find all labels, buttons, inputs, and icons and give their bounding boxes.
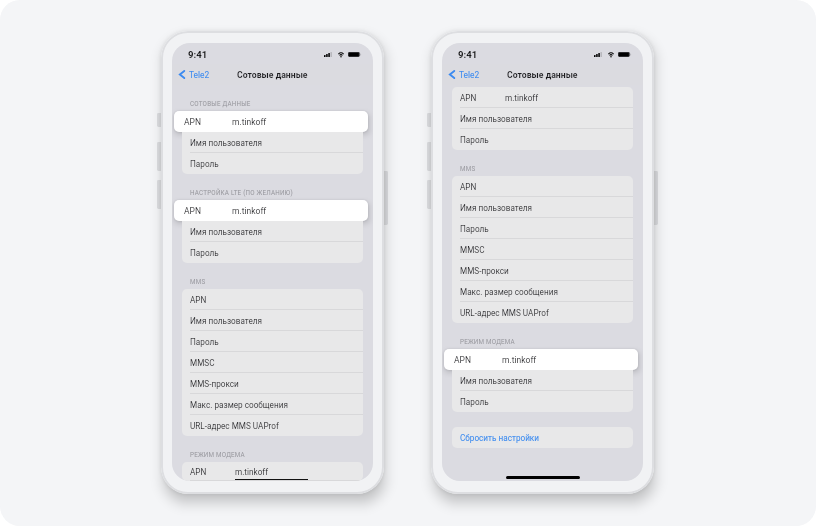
staticText: СОТОВЫЕ ДАННЫЕ [190, 100, 251, 107]
button[interactable]: Back [179, 64, 210, 85]
button[interactable]: Имя пользователя [182, 221, 363, 242]
button[interactable]: Пароль [452, 129, 633, 150]
staticText: Tele2 [459, 70, 480, 80]
staticText: Сотовые данные [507, 70, 578, 80]
button[interactable]: Макс. размер сообщения [452, 281, 633, 302]
button[interactable]: Пароль [452, 391, 633, 412]
button[interactable]: Макс. размер сообщения [182, 394, 363, 415]
button[interactable]: MMSC [182, 352, 363, 373]
staticText: m.tinkoff [505, 93, 539, 103]
staticText: Сотовые данные [237, 70, 308, 80]
staticText: APN [190, 295, 207, 305]
staticText: Пароль [460, 135, 489, 145]
staticText: MMS-прокси [460, 266, 509, 276]
staticText: 9:41 [188, 49, 208, 60]
button[interactable]: Пароль [182, 331, 363, 352]
button[interactable]: MMS-прокси [182, 373, 363, 394]
button[interactable]: Имя пользователя [452, 197, 633, 218]
staticText: Пароль [190, 159, 219, 169]
button[interactable]: Back [449, 64, 480, 85]
button[interactable]: Имя пользователя [182, 132, 363, 153]
staticText: Имя пользователя [460, 376, 533, 386]
staticText: Пароль [460, 397, 489, 407]
staticText: APN [454, 355, 471, 365]
staticText: 9:41 [458, 49, 478, 60]
button[interactable]: APN [452, 176, 633, 197]
staticText: Имя пользователя [460, 203, 533, 213]
staticText: Имя пользователя [190, 138, 263, 148]
staticText: Пароль [190, 337, 219, 347]
staticText: НАСТРОЙКА LTE (ПО ЖЕЛАНИЮ) [190, 189, 293, 196]
staticText: РЕЖИМ МОДЕМА [190, 451, 245, 458]
button[interactable]: Пароль [182, 242, 363, 263]
other: Back [179, 70, 185, 79]
button[interactable]: Пароль [182, 153, 363, 174]
staticText: MMS [460, 165, 476, 172]
staticText: Пароль [460, 224, 489, 234]
staticText: APN [190, 467, 207, 477]
staticText: m.tinkoff [235, 467, 269, 477]
staticText: Сбросить настройки [460, 433, 540, 443]
button[interactable]: APN [182, 462, 363, 481]
button[interactable]: APN [452, 87, 633, 108]
button[interactable]: Пароль [452, 218, 633, 239]
staticText: MMSC [460, 245, 485, 255]
staticText: m.tinkoff [502, 355, 537, 365]
button[interactable]: APN [174, 111, 368, 132]
button[interactable]: Имя пользователя [452, 108, 633, 129]
staticText: Имя пользователя [460, 114, 533, 124]
button[interactable]: MMSC [452, 239, 633, 260]
button[interactable]: URL-адрес MMS UAProf [452, 302, 633, 323]
staticText: APN [184, 206, 201, 216]
staticText: MMSC [190, 358, 215, 368]
staticText: m.tinkoff [232, 206, 267, 216]
staticText: APN [460, 182, 477, 192]
staticText: URL-адрес MMS UAProf [460, 308, 549, 318]
button[interactable]: APN [182, 289, 363, 310]
button[interactable]: Имя пользователя [182, 310, 363, 331]
staticText: Имя пользователя [190, 316, 263, 326]
staticText: Пароль [190, 248, 219, 258]
button[interactable]: Сбросить настройки [452, 427, 633, 448]
staticText: Макс. размер сообщения [460, 287, 558, 297]
staticText: Макс. размер сообщения [190, 400, 288, 410]
staticText: MMS [190, 278, 206, 285]
button[interactable]: APN [174, 200, 368, 221]
button[interactable]: URL-адрес MMS UAProf [182, 415, 363, 436]
staticText: m.tinkoff [232, 117, 267, 127]
staticText: APN [184, 117, 201, 127]
staticText: MMS-прокси [190, 379, 239, 389]
staticText: Имя пользователя [190, 227, 263, 237]
staticText: Tele2 [189, 70, 210, 80]
button[interactable]: Имя пользователя [452, 370, 633, 391]
staticText: РЕЖИМ МОДЕМА [460, 338, 515, 345]
other: Back [449, 70, 455, 79]
staticText: APN [460, 93, 477, 103]
button[interactable]: APN [444, 349, 638, 370]
button[interactable]: MMS-прокси [452, 260, 633, 281]
staticText: URL-адрес MMS UAProf [190, 421, 279, 431]
